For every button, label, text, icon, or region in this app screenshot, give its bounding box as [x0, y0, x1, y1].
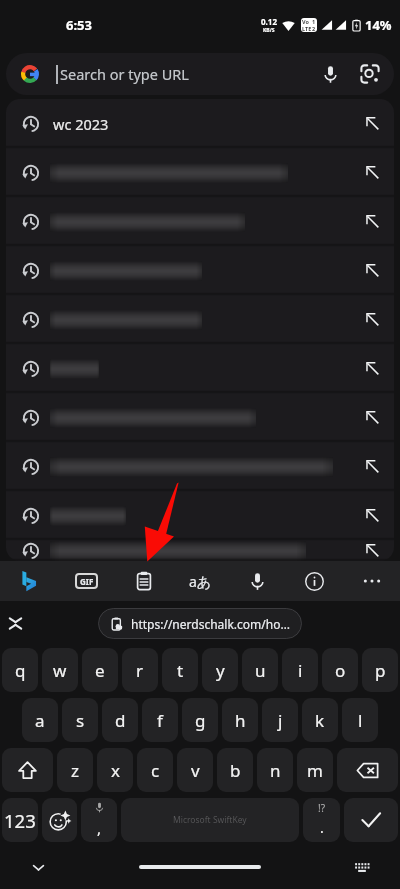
button[interactable]: Search or type URL	[6, 53, 394, 95]
staticText: 14%	[365, 16, 392, 34]
staticText: Vo	[302, 18, 309, 25]
staticText: KB/S	[263, 27, 275, 34]
button[interactable]: Fill in query	[6, 197, 394, 246]
button[interactable]: Fill in query	[6, 393, 394, 442]
button[interactable]: Translate	[172, 561, 229, 601]
staticText: u	[255, 659, 266, 682]
other: Fill in query	[366, 215, 379, 228]
staticText: h	[235, 709, 246, 732]
button[interactable]: h	[222, 698, 258, 742]
staticText: a	[35, 709, 45, 732]
staticText: ,	[97, 818, 102, 838]
button[interactable]: n	[257, 748, 293, 792]
other: Fill in query	[366, 460, 379, 473]
button[interactable]: g	[182, 698, 218, 742]
button[interactable]: Backspace	[337, 748, 398, 792]
button[interactable]: Hide keyboard	[24, 853, 52, 881]
staticText: j	[278, 709, 283, 732]
button[interactable]: Clipboard	[115, 561, 172, 601]
button[interactable]: m	[297, 748, 333, 792]
button[interactable]: Fill in query	[6, 540, 394, 561]
button[interactable]: x	[97, 748, 133, 792]
button[interactable]: d	[102, 698, 138, 742]
button[interactable]: i	[282, 648, 318, 692]
button[interactable]: GIF	[58, 561, 115, 601]
button[interactable]: z	[57, 748, 93, 792]
button[interactable]: !?	[303, 798, 340, 842]
other: Backspace	[356, 759, 379, 782]
button[interactable]: https://nerdschalk.com/ho…	[98, 608, 302, 639]
button[interactable]: Fill in query	[6, 442, 394, 491]
staticText: d	[115, 709, 126, 732]
button[interactable]: Enter	[344, 798, 398, 842]
other: Shift	[17, 760, 38, 781]
staticText: 123	[4, 808, 36, 833]
button[interactable]: o	[322, 648, 358, 692]
button[interactable]: a	[22, 698, 58, 742]
staticText: r	[136, 659, 144, 682]
button[interactable]: Emoji	[42, 798, 77, 842]
other: Fill in query	[366, 264, 379, 277]
button[interactable]: Switch keyboard	[348, 853, 376, 881]
staticText: GIF	[80, 576, 94, 587]
button[interactable]: Google Lens	[350, 54, 390, 94]
staticText: q	[15, 659, 26, 682]
button[interactable]: More options	[343, 561, 400, 601]
staticText: p	[375, 659, 386, 682]
button[interactable]: c	[137, 748, 173, 792]
button[interactable]: e	[82, 648, 118, 692]
button[interactable]: Microsoft SwiftKey	[121, 798, 299, 842]
staticText: 2	[312, 25, 316, 32]
staticText: o	[335, 659, 346, 682]
staticText: 1	[312, 18, 316, 25]
staticText: Microsoft SwiftKey	[173, 814, 247, 826]
button[interactable]: b	[217, 748, 253, 792]
button[interactable]: Fill in query	[6, 246, 394, 295]
other: Fill in query	[366, 166, 379, 179]
button[interactable]: l	[342, 698, 378, 742]
other: Enter	[359, 808, 383, 832]
button[interactable]: Close	[0, 608, 30, 638]
button[interactable]: w	[42, 648, 78, 692]
button[interactable]: k	[302, 698, 338, 742]
staticText: wc 2023	[53, 114, 109, 134]
button[interactable]: Voice input	[229, 561, 286, 601]
staticText: https://nerdschalk.com/ho…	[131, 616, 290, 632]
staticText: i	[298, 659, 303, 682]
staticText: l	[358, 709, 363, 732]
button[interactable]: Fill in query	[6, 295, 394, 344]
button[interactable]: Fill in query	[6, 344, 394, 393]
button[interactable]: p	[362, 648, 398, 692]
other: Fill in query	[366, 544, 379, 557]
button[interactable]: Shift	[2, 748, 53, 792]
other: Fill in query	[366, 509, 379, 522]
button[interactable]: Fill in query	[6, 491, 394, 540]
button[interactable]: f	[142, 698, 178, 742]
staticText: Search or type URL	[60, 64, 189, 84]
button[interactable]: u	[242, 648, 278, 692]
staticText: s	[76, 709, 85, 732]
button[interactable]: t	[162, 648, 198, 692]
button[interactable]: q	[2, 648, 38, 692]
button[interactable]: v	[177, 748, 213, 792]
other: Fill in query	[366, 362, 379, 375]
staticText: aあ	[189, 572, 212, 591]
button[interactable]: j	[262, 698, 298, 742]
button[interactable]: 123	[2, 798, 38, 842]
button[interactable]: wc 2023	[6, 99, 394, 148]
staticText: z	[71, 759, 79, 782]
button[interactable]: s	[62, 698, 98, 742]
other: Fill in query	[366, 117, 379, 130]
button[interactable]: Info	[286, 561, 343, 601]
button[interactable]: Fill in query	[6, 148, 394, 197]
button[interactable]: y	[202, 648, 238, 692]
button[interactable]: Bing	[0, 561, 58, 601]
button[interactable]: ,	[81, 798, 117, 842]
staticText: b	[230, 759, 241, 782]
staticText: t	[177, 659, 184, 682]
button[interactable]: r	[122, 648, 158, 692]
staticText: v	[191, 759, 200, 782]
staticText: 6:53	[66, 16, 92, 34]
button[interactable]: Voice search	[310, 54, 350, 94]
other: Fill in query	[366, 313, 379, 326]
